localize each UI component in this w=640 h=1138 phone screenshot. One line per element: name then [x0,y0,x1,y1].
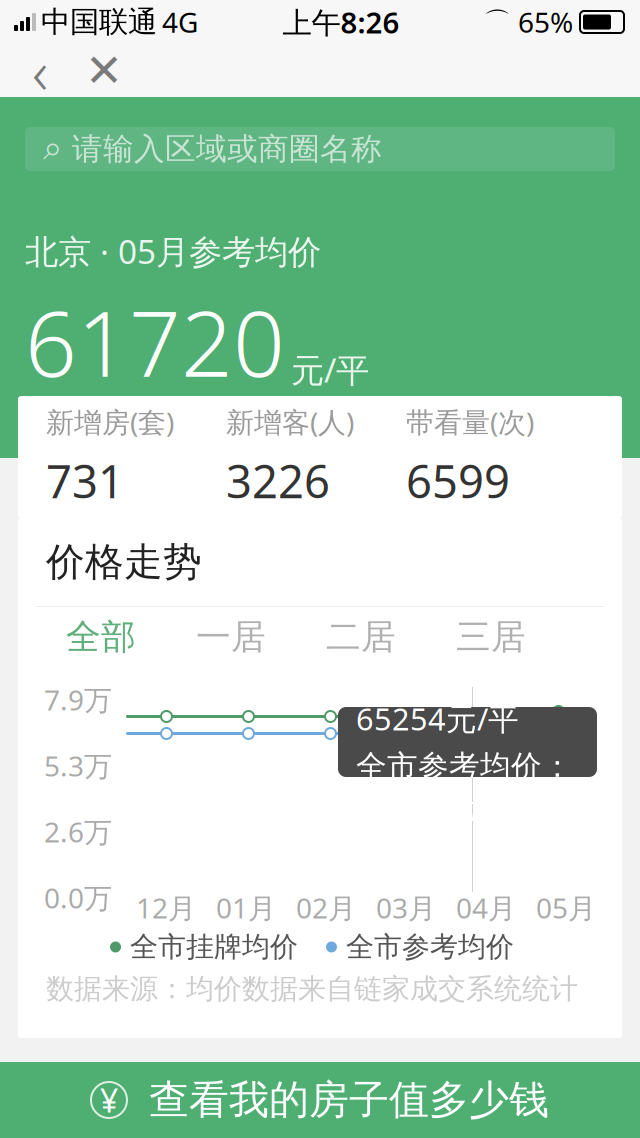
staticText: 全部 [66,616,136,658]
button[interactable]: 二居 [296,607,426,667]
staticText: 05月 [536,889,596,926]
staticText: 03月 [376,889,436,926]
staticText: 价格走势 [46,538,202,586]
staticText: 三居 [456,616,526,658]
button[interactable]: Back [8,43,72,97]
button[interactable]: ¥ [0,1062,640,1138]
staticText: 04月 [456,889,516,926]
staticText: 7.9万 [44,681,112,718]
staticText: 65% [518,3,573,41]
staticText: 全市参考均价： 60769元/平 [356,745,573,826]
staticText: 北京 · 05月参考均价 [25,229,321,273]
staticText: 元/平 [291,347,369,392]
staticText: 带看量(次) [406,403,534,440]
staticText: 12月 [136,889,196,926]
button[interactable]: 三居 [426,607,556,667]
button[interactable]: Close [72,43,136,97]
staticText: 上午8:26 [282,2,399,41]
staticText: 新增客(人) [226,403,354,440]
staticText: 731 [46,450,124,511]
button[interactable]: 一居 [166,607,296,667]
staticText: ⌒ [484,6,511,38]
staticText: 新增房(套) [46,403,174,440]
staticText: 6599 [406,450,510,511]
staticText: ✕ [85,45,123,96]
staticText: 01月 [216,889,276,926]
staticText: 查看我的房子值多少钱 [149,1075,549,1124]
staticText: 全市参考均价 [346,930,514,964]
staticText: 0.0万 [44,879,112,916]
staticText: ¥ [100,1079,118,1121]
staticText: 一居 [196,616,266,658]
staticText: 二居 [326,616,396,658]
staticText: 5.3万 [44,747,112,784]
button[interactable]: 全部 [36,607,166,667]
staticText: 2.6万 [44,813,112,850]
staticText: ⌕ [43,132,62,166]
staticText: 全市挂牌均价： 65254元/平 [356,658,573,739]
staticText: 02月 [296,889,356,926]
staticText: 3226 [226,450,330,511]
staticText: 请输入区域或商圈名称 [72,130,382,168]
staticText: 数据来源：均价数据来自链家成交系统统计 [46,972,578,1006]
staticText: 全市挂牌均价 [130,930,298,964]
button[interactable]: ⌕ [25,127,615,171]
staticText: 61720 [25,281,285,402]
staticText: ‹ [32,30,48,111]
staticText: 中国联通 [41,4,157,40]
staticText: 4G [162,3,198,41]
